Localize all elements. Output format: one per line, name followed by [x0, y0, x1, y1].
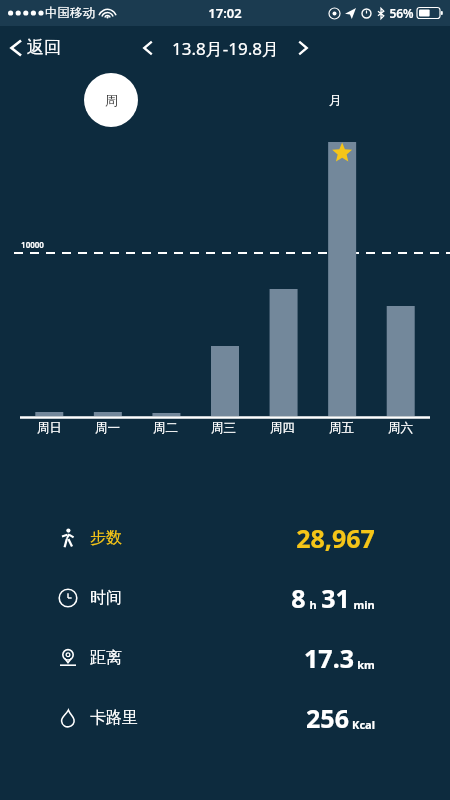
staticText: 周	[105, 92, 118, 108]
staticText: 月	[329, 92, 342, 108]
staticText: 周二	[153, 420, 178, 436]
staticText: 周四	[270, 420, 295, 436]
staticText: 56%	[389, 5, 414, 21]
button[interactable]: 卡路里	[0, 688, 450, 748]
staticText: 卡路里	[90, 708, 138, 728]
other: 步数	[58, 528, 78, 548]
staticText: 周日	[37, 420, 62, 436]
button[interactable]: 月	[308, 73, 362, 127]
other: 时间	[58, 588, 78, 608]
button[interactable]: 距离	[0, 628, 450, 688]
staticText: 31	[321, 581, 350, 615]
staticText: 中国移动	[45, 5, 95, 21]
staticText: h	[309, 597, 317, 612]
staticText: 10000	[21, 239, 44, 250]
staticText: 28,967	[296, 521, 375, 555]
staticText: 8	[291, 581, 306, 615]
staticText: 17:02	[208, 4, 242, 22]
staticText: 周六	[388, 420, 413, 436]
staticText: 时间	[90, 588, 122, 608]
other: 距离	[58, 648, 78, 668]
button[interactable]: 返回	[0, 33, 71, 62]
staticText: 返回	[27, 37, 61, 58]
staticText: km	[357, 657, 375, 672]
staticText: 步数	[90, 528, 122, 548]
staticText: 256	[306, 701, 349, 735]
staticText: 距离	[90, 648, 122, 668]
staticText: 周五	[329, 420, 354, 436]
staticText: 13.8月-19.8月	[172, 37, 279, 60]
button[interactable]: 步数	[0, 508, 450, 568]
other: 卡路里	[58, 708, 78, 728]
button[interactable]: 时间	[0, 568, 450, 628]
staticText: 17.3	[304, 641, 354, 675]
staticText: Kcal	[352, 717, 375, 732]
button[interactable]: 周	[84, 73, 138, 127]
button[interactable]: 上一周	[134, 34, 162, 62]
staticText: 周三	[211, 420, 236, 436]
button[interactable]: 下一周	[289, 34, 317, 62]
staticText: 周一	[95, 420, 120, 436]
staticText: min	[353, 597, 375, 612]
